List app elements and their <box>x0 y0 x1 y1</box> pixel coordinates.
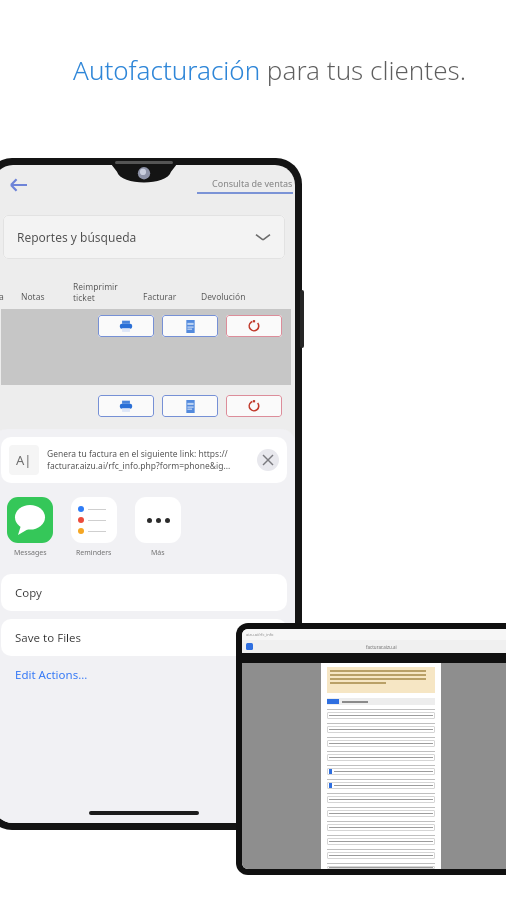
button[interactable]: Copy <box>1 574 287 611</box>
staticText: Consulta de ventas <box>212 177 293 189</box>
staticText: Facturar <box>143 291 177 303</box>
staticText: Autofacturación para tus clientes. <box>24 52 466 87</box>
button[interactable]: A| <box>1 437 287 483</box>
button[interactable]: Devolución <box>226 315 282 337</box>
staticText: Devolución <box>201 291 246 303</box>
button[interactable]: Facturar <box>162 315 218 337</box>
staticText: Copy <box>15 585 42 601</box>
button[interactable]: Reimprimir ticket <box>98 395 154 417</box>
button[interactable]: Save to Files <box>1 619 287 656</box>
button[interactable]: Reportes y búsqueda <box>3 215 285 259</box>
staticText: Save to Files <box>15 630 82 646</box>
staticText: Reminders <box>76 548 112 558</box>
staticText: aizu.ai/rfc_info <box>246 632 274 637</box>
staticText: Edit Actions... <box>15 667 88 683</box>
staticText: Messages <box>14 548 47 558</box>
button[interactable]: Close <box>257 449 279 471</box>
button[interactable]: Reminders <box>71 497 117 558</box>
staticText: Reportes y búsqueda <box>17 229 137 245</box>
staticText: a <box>0 291 4 303</box>
button[interactable]: Reimprimir ticket <box>98 315 154 337</box>
button[interactable]: Facturar <box>162 395 218 417</box>
staticText: Notas <box>21 291 45 303</box>
button[interactable]: Edit Actions... <box>1 656 287 693</box>
button[interactable]: Back <box>1 168 35 202</box>
staticText: Reimprimir ticket <box>73 281 118 303</box>
button[interactable]: Messages <box>7 497 53 558</box>
staticText: facturar.aizu.ai <box>366 644 397 650</box>
staticText: A| <box>16 451 32 469</box>
button[interactable]: Más <box>135 497 181 558</box>
button[interactable]: Devolución <box>226 395 282 417</box>
button[interactable]: Consulta de ventas <box>197 177 293 194</box>
staticText: Más <box>151 548 165 558</box>
staticText: Genera tu factura en el siguiente link: … <box>47 448 251 472</box>
